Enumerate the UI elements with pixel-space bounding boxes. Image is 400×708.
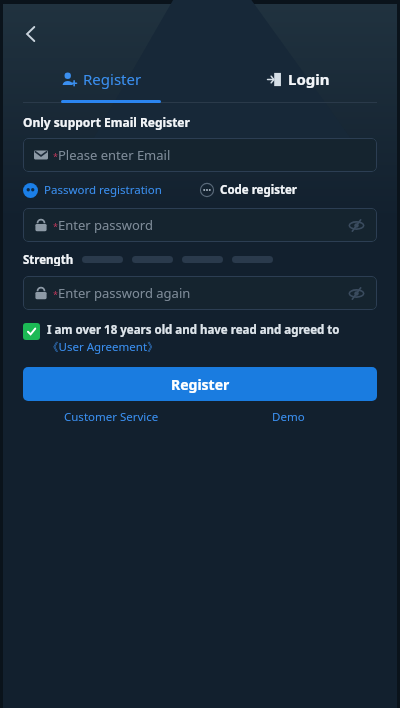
staticText: Demo xyxy=(272,409,305,425)
button[interactable]: Demo xyxy=(200,409,377,425)
staticText: I am over 18 years old and have read and… xyxy=(47,322,377,355)
button[interactable]: Password registration xyxy=(23,182,200,198)
button[interactable]: Toggle password visibility xyxy=(346,215,366,235)
button[interactable]: Code register xyxy=(200,182,377,198)
staticText: Only support Email Register xyxy=(23,114,190,130)
staticText: *Enter password again xyxy=(53,284,191,302)
button[interactable]: Toggle password visibility xyxy=(346,283,366,303)
staticText: *Enter password xyxy=(53,216,153,234)
staticText: Customer Service xyxy=(64,409,159,425)
button[interactable]: Register xyxy=(23,367,377,401)
button[interactable]: *Enter password again xyxy=(23,276,377,310)
button[interactable]: Register xyxy=(3,58,200,100)
button[interactable]: *Please enter Email xyxy=(23,138,377,172)
button[interactable]: Login xyxy=(200,58,397,100)
staticText: Login xyxy=(288,69,330,89)
staticText: Register xyxy=(171,375,230,394)
staticText: Register xyxy=(83,69,142,89)
button[interactable]: I am over 18 years old and have read and… xyxy=(23,322,377,355)
staticText: Strength xyxy=(23,252,74,266)
button[interactable]: Back xyxy=(9,12,53,56)
staticText: Password registration xyxy=(44,182,162,198)
button[interactable]: *Enter password xyxy=(23,208,377,242)
button[interactable]: Customer Service xyxy=(23,409,200,425)
staticText: *Please enter Email xyxy=(53,146,171,164)
staticText: Code register xyxy=(220,182,297,198)
